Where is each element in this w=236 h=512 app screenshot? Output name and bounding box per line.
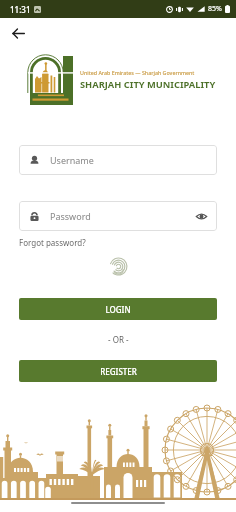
staticText: Username xyxy=(50,154,94,166)
staticText: 11:31 xyxy=(10,4,31,15)
button[interactable]: Password xyxy=(19,201,217,231)
button[interactable]: Back xyxy=(6,21,30,45)
button[interactable]: LOGIN xyxy=(19,298,217,320)
staticText: 85% xyxy=(208,4,222,14)
button[interactable]: REGISTER xyxy=(19,360,217,382)
staticText: LOGIN xyxy=(105,304,131,315)
button[interactable]: Username xyxy=(19,145,217,175)
button[interactable]: Forgot password? xyxy=(19,237,86,248)
staticText: - OR - xyxy=(108,334,129,345)
staticText: REGISTER xyxy=(100,366,137,377)
button[interactable]: Show password xyxy=(193,208,209,224)
staticText: SHARJAH CITY MUNICIPALITY xyxy=(80,78,216,91)
staticText: United Arab Emirates — Sharjah Governmen… xyxy=(80,69,195,76)
staticText: Password xyxy=(50,210,91,222)
button[interactable]: Fingerprint login xyxy=(108,256,128,276)
